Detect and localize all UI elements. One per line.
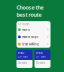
button[interactable]: 9:55 — [34, 50, 50, 68]
staticText: > — [47, 35, 49, 39]
staticText: Fewest stops — [22, 35, 38, 39]
staticText: best route — [16, 11, 41, 18]
staticText: > — [47, 28, 49, 31]
staticText: OPTIONS — [18, 23, 29, 26]
staticText: Choose the — [16, 4, 43, 11]
staticText: Fastest — [22, 28, 30, 31]
staticText: 9:41 — [18, 51, 25, 55]
button[interactable]: 9:41 — [16, 50, 32, 68]
staticText: > — [47, 42, 49, 46]
button[interactable]: Fastest — [16, 26, 50, 33]
button[interactable]: Fewest stops — [16, 33, 50, 40]
staticText: Details — [36, 61, 45, 65]
staticText: 26 min — [18, 55, 28, 58]
staticText: 31 min — [36, 55, 46, 58]
staticText: 9:55 — [36, 51, 43, 55]
staticText: Least walking — [22, 42, 39, 46]
staticText: Details — [18, 61, 27, 65]
button[interactable]: Least walking — [16, 40, 50, 48]
